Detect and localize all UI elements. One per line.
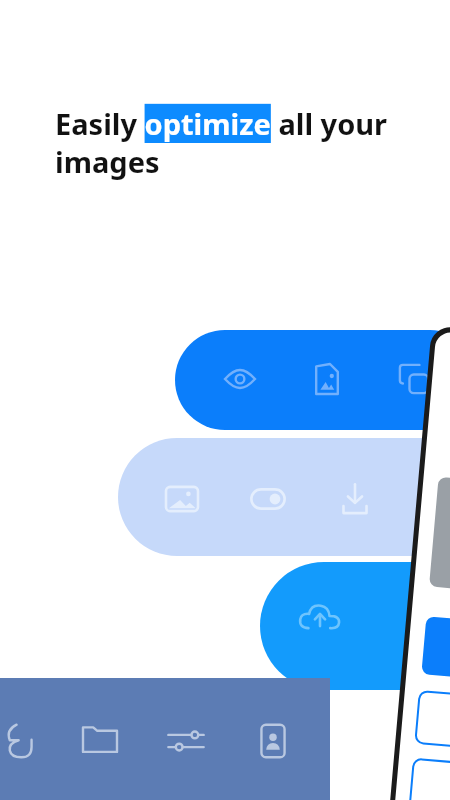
button[interactable]: Files	[72, 710, 140, 776]
button[interactable]: Gestures	[0, 710, 54, 776]
button[interactable]: Settings	[158, 710, 226, 776]
staticText: Easily optimize all your images	[55, 104, 388, 181]
button[interactable]: Image options, toggle and download	[118, 438, 450, 556]
button[interactable]: Easily optimize all your images	[55, 104, 388, 181]
button[interactable]: Upload to cloud	[260, 562, 450, 678]
button[interactable]: Account	[244, 710, 312, 776]
button[interactable]: Preview, convert and duplicate	[175, 330, 450, 430]
